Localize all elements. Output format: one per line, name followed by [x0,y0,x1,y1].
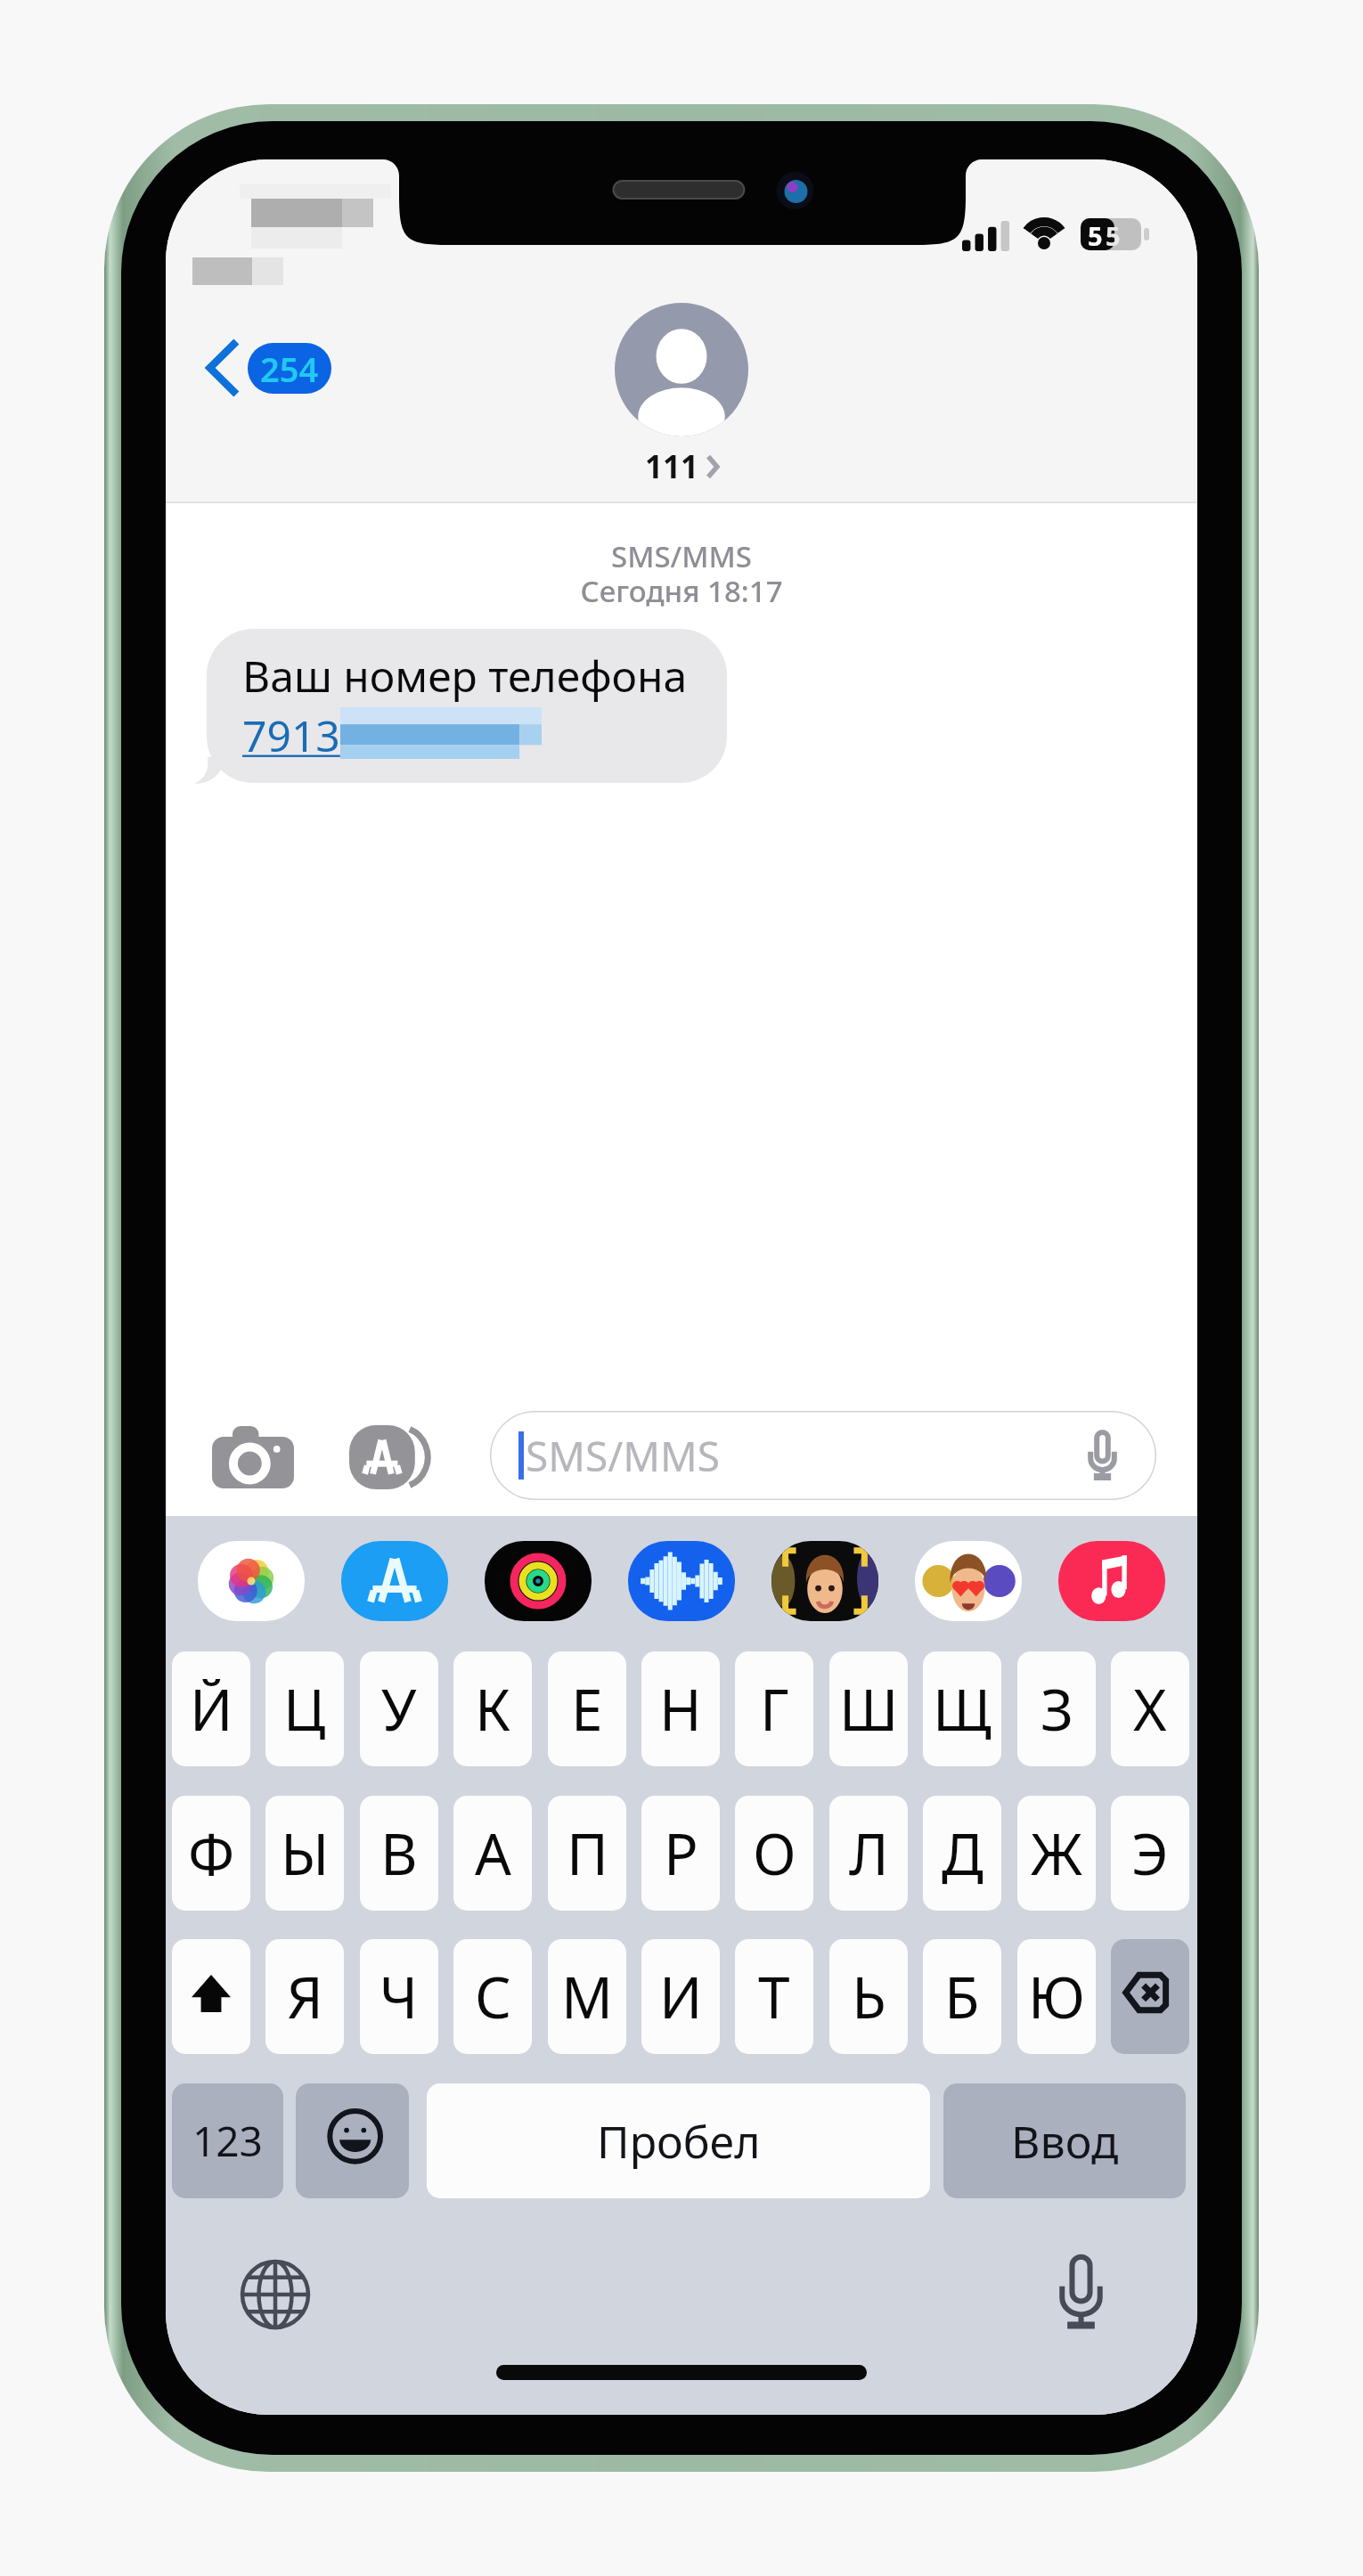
button[interactable]: Ч [360,1939,438,2054]
button[interactable]: И [641,1939,720,2054]
button[interactable]: Б [923,1939,1001,2054]
staticText: Ваш номер телефона [242,647,688,705]
staticText: Ввод [1011,2111,1119,2172]
staticText: Ш [839,1670,899,1748]
button[interactable]: Д [923,1796,1001,1911]
button[interactable]: О [735,1796,813,1911]
staticText: 111 [645,445,699,488]
button[interactable]: Й [172,1651,250,1766]
button[interactable]: К [453,1651,532,1766]
button[interactable]: З [1017,1651,1096,1766]
staticText: 5 [1106,218,1121,250]
button[interactable]: Л [829,1796,908,1911]
staticText: Я [287,1958,323,2035]
button[interactable]: Я [265,1939,344,2054]
button[interactable]: Emoji [296,2083,409,2198]
button[interactable]: Change keyboard language [240,2259,311,2330]
staticText: Ь [852,1958,886,2035]
button[interactable]: 123 [172,2083,283,2198]
button[interactable]: П [548,1796,626,1911]
button[interactable]: Back [201,336,244,400]
button[interactable]: iMessage app 3 [485,1541,592,1621]
staticText: Ж [1031,1814,1082,1892]
button[interactable]: Ю [1017,1939,1096,2054]
button[interactable]: Т [735,1939,813,2054]
button[interactable]: Ь [829,1939,908,2054]
staticText: З [1041,1670,1073,1748]
staticText: Ч [380,1958,419,2035]
staticText: Н [659,1670,702,1748]
staticText: Д [942,1814,983,1892]
button[interactable]: Э [1111,1796,1189,1911]
staticText: Сегодня 18:17 [166,571,1197,611]
staticText: Р [664,1814,698,1892]
button[interactable]: Ц [265,1651,344,1766]
staticText: С [475,1958,511,2035]
staticText: Ы [281,1814,330,1892]
button[interactable]: А [453,1796,532,1911]
button[interactable]: App Store [349,1425,429,1489]
button[interactable]: Shift [172,1939,250,2054]
staticText: К [475,1670,510,1748]
staticText: Т [758,1958,790,2035]
staticText: Ю [1028,1958,1085,2035]
staticText: Й [190,1670,233,1748]
staticText: Ц [283,1670,326,1748]
staticText: Е [571,1670,603,1748]
staticText: О [753,1814,796,1892]
button[interactable]: Ж [1017,1796,1096,1911]
staticText: Пробел [597,2111,761,2172]
staticText: Ф [188,1814,235,1892]
button[interactable]: Camera [212,1426,294,1488]
button[interactable]: Ваш номер телефона [207,629,727,783]
staticText: У [381,1670,417,1748]
staticText: SMS/MMS [526,1428,721,1484]
button[interactable]: Ы [265,1796,344,1911]
staticText: SMS/MMS [166,536,1197,576]
button[interactable]: Г [735,1651,813,1766]
button[interactable]: У [360,1651,438,1766]
staticText: Х [1133,1670,1167,1748]
button[interactable]: Contact 111 details [615,303,748,488]
button[interactable]: iMessage app 6 [915,1541,1022,1621]
button[interactable]: Ввод [943,2083,1186,2198]
button[interactable]: Пробел [427,2083,930,2198]
button[interactable]: Щ [923,1651,1001,1766]
button[interactable]: 254 unread [248,343,331,394]
button[interactable]: Н [641,1651,720,1766]
button[interactable]: iMessage app 7 [1058,1541,1165,1621]
button[interactable]: iMessage app 5 [771,1541,878,1621]
button[interactable]: В [360,1796,438,1911]
button[interactable]: С [453,1939,532,2054]
staticText: И [659,1958,703,2035]
button[interactable]: Р [641,1796,720,1911]
staticText: А [475,1814,511,1892]
button[interactable]: Backspace [1111,1939,1189,2054]
button[interactable]: iMessage app 2 [341,1541,448,1621]
button[interactable]: Ш [829,1651,908,1766]
staticText: Л [849,1814,889,1892]
staticText: М [561,1958,614,2035]
button[interactable]: Dictate [1055,2255,1107,2329]
staticText: 5 [1088,218,1103,250]
staticText: 123 [192,2113,263,2169]
other: Dictate message [1086,1431,1119,1480]
button[interactable]: Message input [490,1411,1156,1500]
staticText: П [567,1814,608,1892]
button[interactable]: Ф [172,1796,250,1911]
staticText: В [380,1814,418,1892]
button[interactable]: iMessage app 4 [628,1541,735,1621]
button[interactable]: Е [548,1651,626,1766]
staticText: Э [1131,1814,1169,1892]
staticText: Б [944,1958,980,2035]
button[interactable]: М [548,1939,626,2054]
staticText: 7913 [242,706,340,764]
staticText: Щ [933,1670,992,1748]
staticText: 254 [260,346,319,392]
button[interactable]: Х [1111,1651,1189,1766]
button[interactable]: iMessage app 1 [198,1541,305,1621]
staticText: Г [760,1670,789,1748]
